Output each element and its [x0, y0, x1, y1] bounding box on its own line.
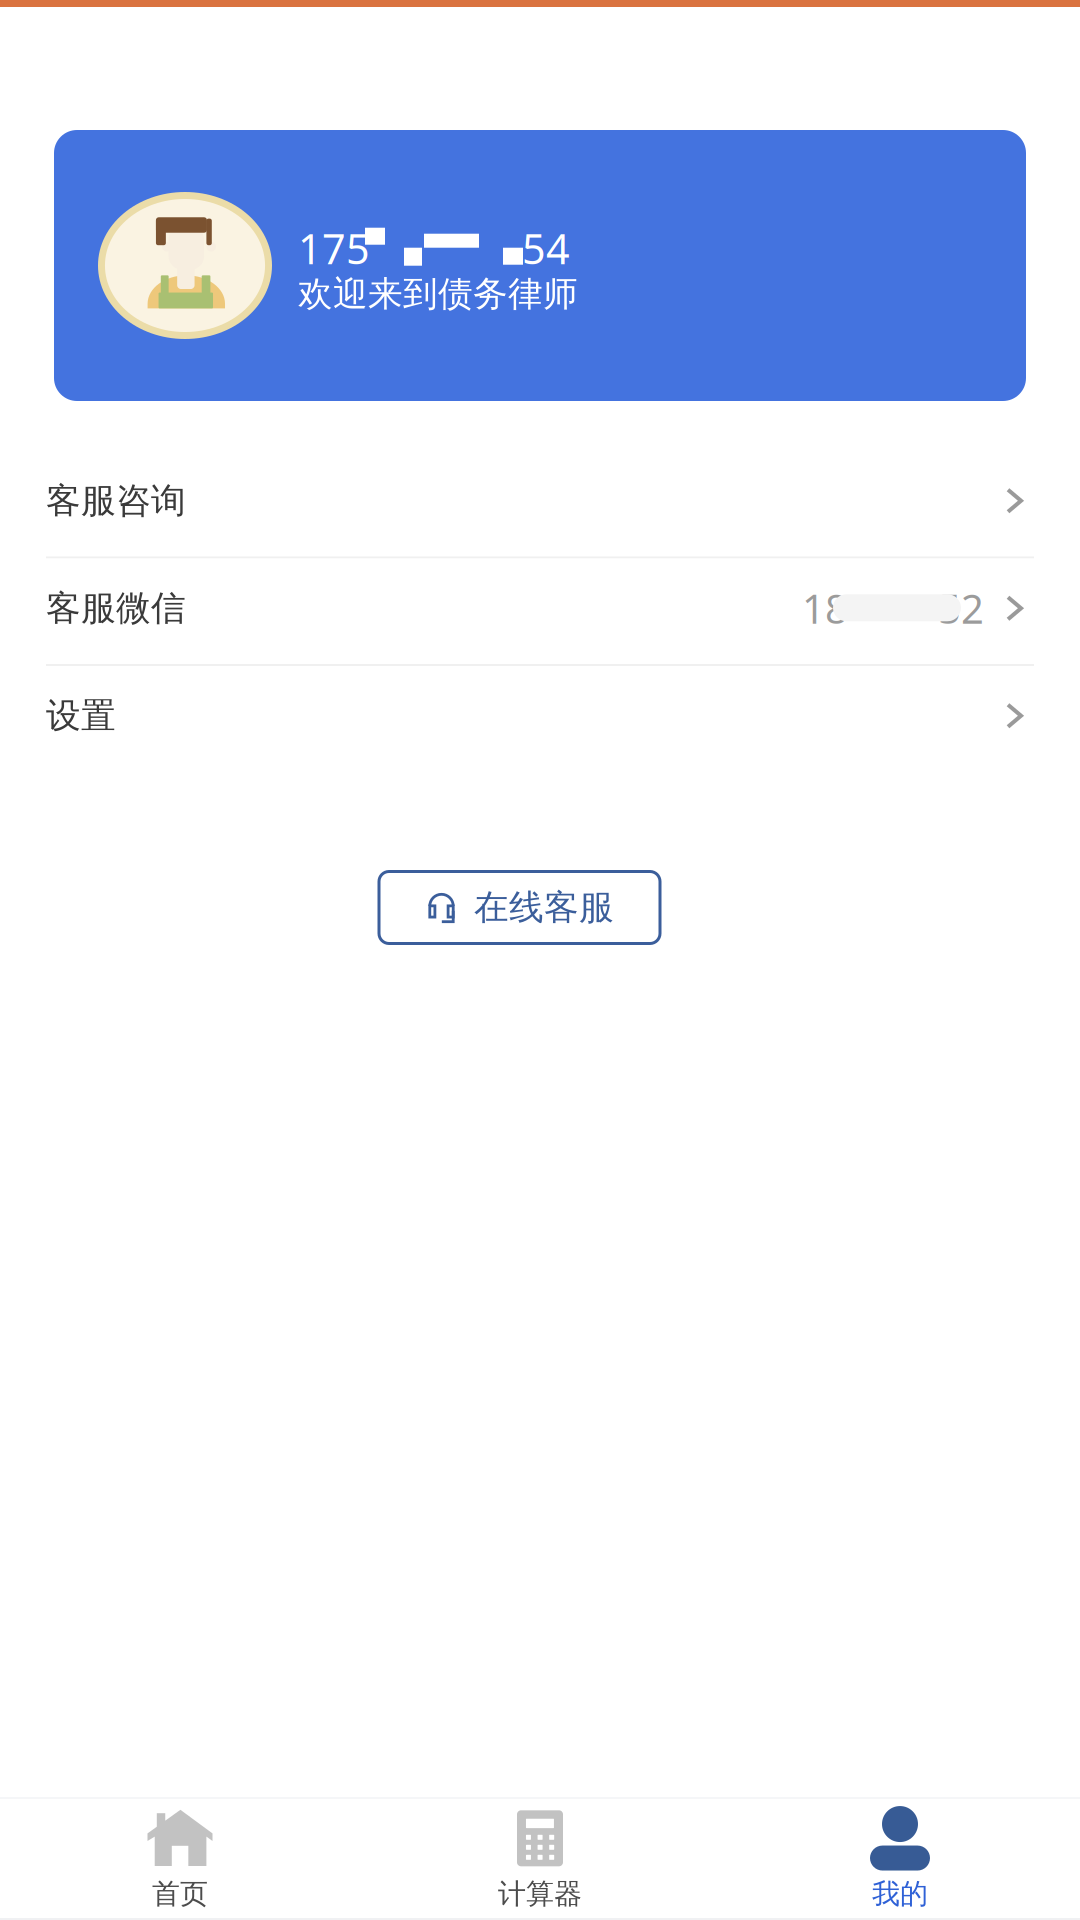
button[interactable]: 首页 [0, 1796, 360, 1920]
button[interactable]: 175 [54, 130, 1026, 401]
staticText: 欢迎来到债务律师 [298, 273, 578, 315]
button[interactable]: 设置 [0, 666, 1080, 771]
staticText: 175 [298, 221, 370, 276]
staticText: 客服咨询 [46, 479, 186, 522]
button[interactable]: 计算器 [360, 1796, 720, 1920]
button[interactable]: 客服微信 [0, 558, 1080, 664]
staticText: 在线客服 [474, 886, 614, 929]
staticText: 客服微信 [46, 587, 186, 630]
staticText: 18 [802, 582, 848, 635]
staticText: 我的 [872, 1877, 928, 1911]
staticText: 设置 [46, 694, 116, 737]
staticText: 52 [938, 582, 984, 635]
staticText: 首页 [152, 1877, 208, 1911]
staticText: 计算器 [498, 1877, 582, 1911]
button[interactable]: 客服咨询 [0, 451, 1080, 556]
staticText: 54 [522, 221, 570, 276]
button[interactable]: 我的 [720, 1796, 1080, 1920]
button[interactable]: 在线客服 [379, 871, 660, 943]
